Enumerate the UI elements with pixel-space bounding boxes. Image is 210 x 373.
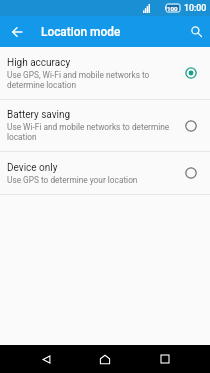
button[interactable]: Recent apps xyxy=(151,345,179,373)
button[interactable]: High accuracy xyxy=(0,47,210,99)
button[interactable]: Home xyxy=(91,345,119,373)
staticText: Use GPS to determine your location xyxy=(7,175,138,185)
staticText: Location mode xyxy=(41,25,121,39)
button[interactable]: Back xyxy=(32,345,60,373)
button[interactable]: Device only xyxy=(0,152,210,194)
staticText: Battery saving xyxy=(7,109,71,121)
button[interactable]: Search xyxy=(179,16,210,47)
staticText: Use Wi-Fi and mobile networks to determi… xyxy=(7,122,170,142)
staticText: 100 xyxy=(167,5,178,12)
button[interactable]: Battery saving xyxy=(0,100,210,151)
staticText: Use GPS, Wi-Fi and mobile networks to de… xyxy=(7,70,150,90)
staticText: 10:00 xyxy=(184,3,207,13)
staticText: High accuracy xyxy=(7,57,71,69)
staticText: Device only xyxy=(7,162,58,174)
button[interactable]: Navigate up xyxy=(0,16,31,47)
